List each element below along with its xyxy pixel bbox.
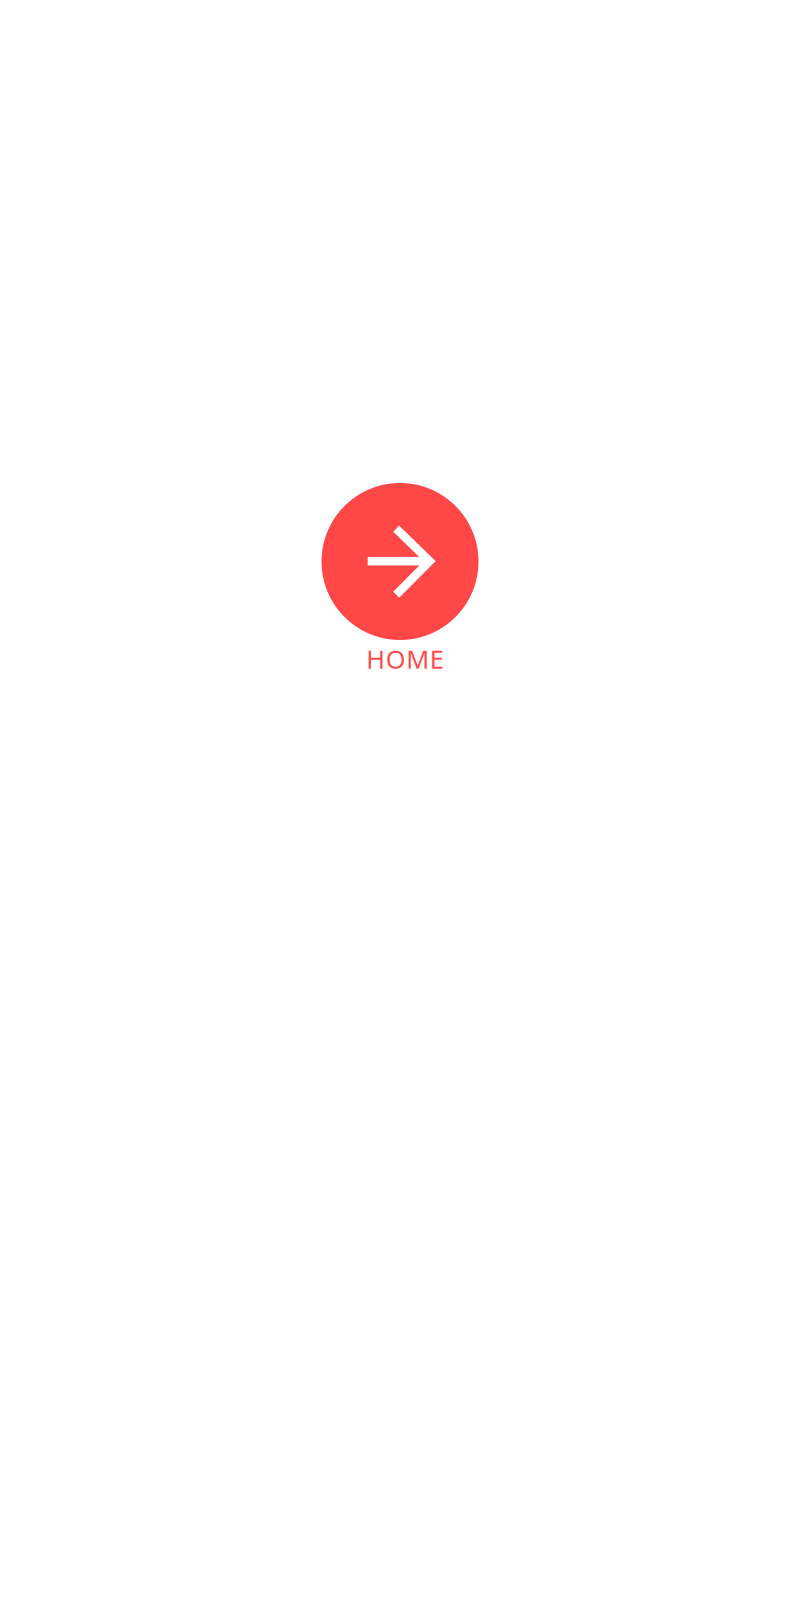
- staticText: HOME: [366, 642, 444, 676]
- button[interactable]: Home: [321, 483, 478, 679]
